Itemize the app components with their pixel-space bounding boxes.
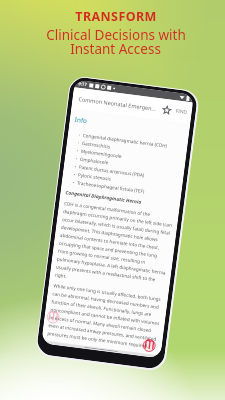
staticText: Myelomeningocele [81, 148, 122, 159]
staticText: FIND [175, 107, 188, 116]
staticText: While only one lung is usually affected,… [47, 282, 163, 351]
staticText: CDH is a congenital malformation of the … [54, 200, 174, 292]
staticText: Omphalocele [79, 156, 109, 165]
button[interactable]: Publisher mark [46, 310, 60, 324]
staticText: TRANSFORM [75, 8, 157, 25]
staticText: Tracheoesophageal fistula (TEF) [76, 179, 146, 194]
staticText: Congenital Diaphragmatic Hernia [65, 189, 142, 206]
staticText: Common Neonatal Emergen... [78, 95, 160, 112]
staticText: Clinical Decisions with [46, 26, 186, 44]
staticText: 9:17 [78, 81, 88, 88]
staticText: Info [74, 115, 88, 125]
staticText: Gastroschisis [82, 140, 111, 149]
staticText: Pyloric stenosis [77, 172, 112, 182]
staticText: Congenital diaphragmatic hernia (CDH) [83, 132, 168, 149]
button[interactable]: FIND [174, 105, 189, 118]
button[interactable]: App logo [142, 338, 156, 353]
staticText: Patent ductus arteriosus (PDA) [78, 164, 145, 178]
button[interactable]: Bookmark [161, 105, 172, 116]
staticText: Instant Access [70, 40, 161, 58]
